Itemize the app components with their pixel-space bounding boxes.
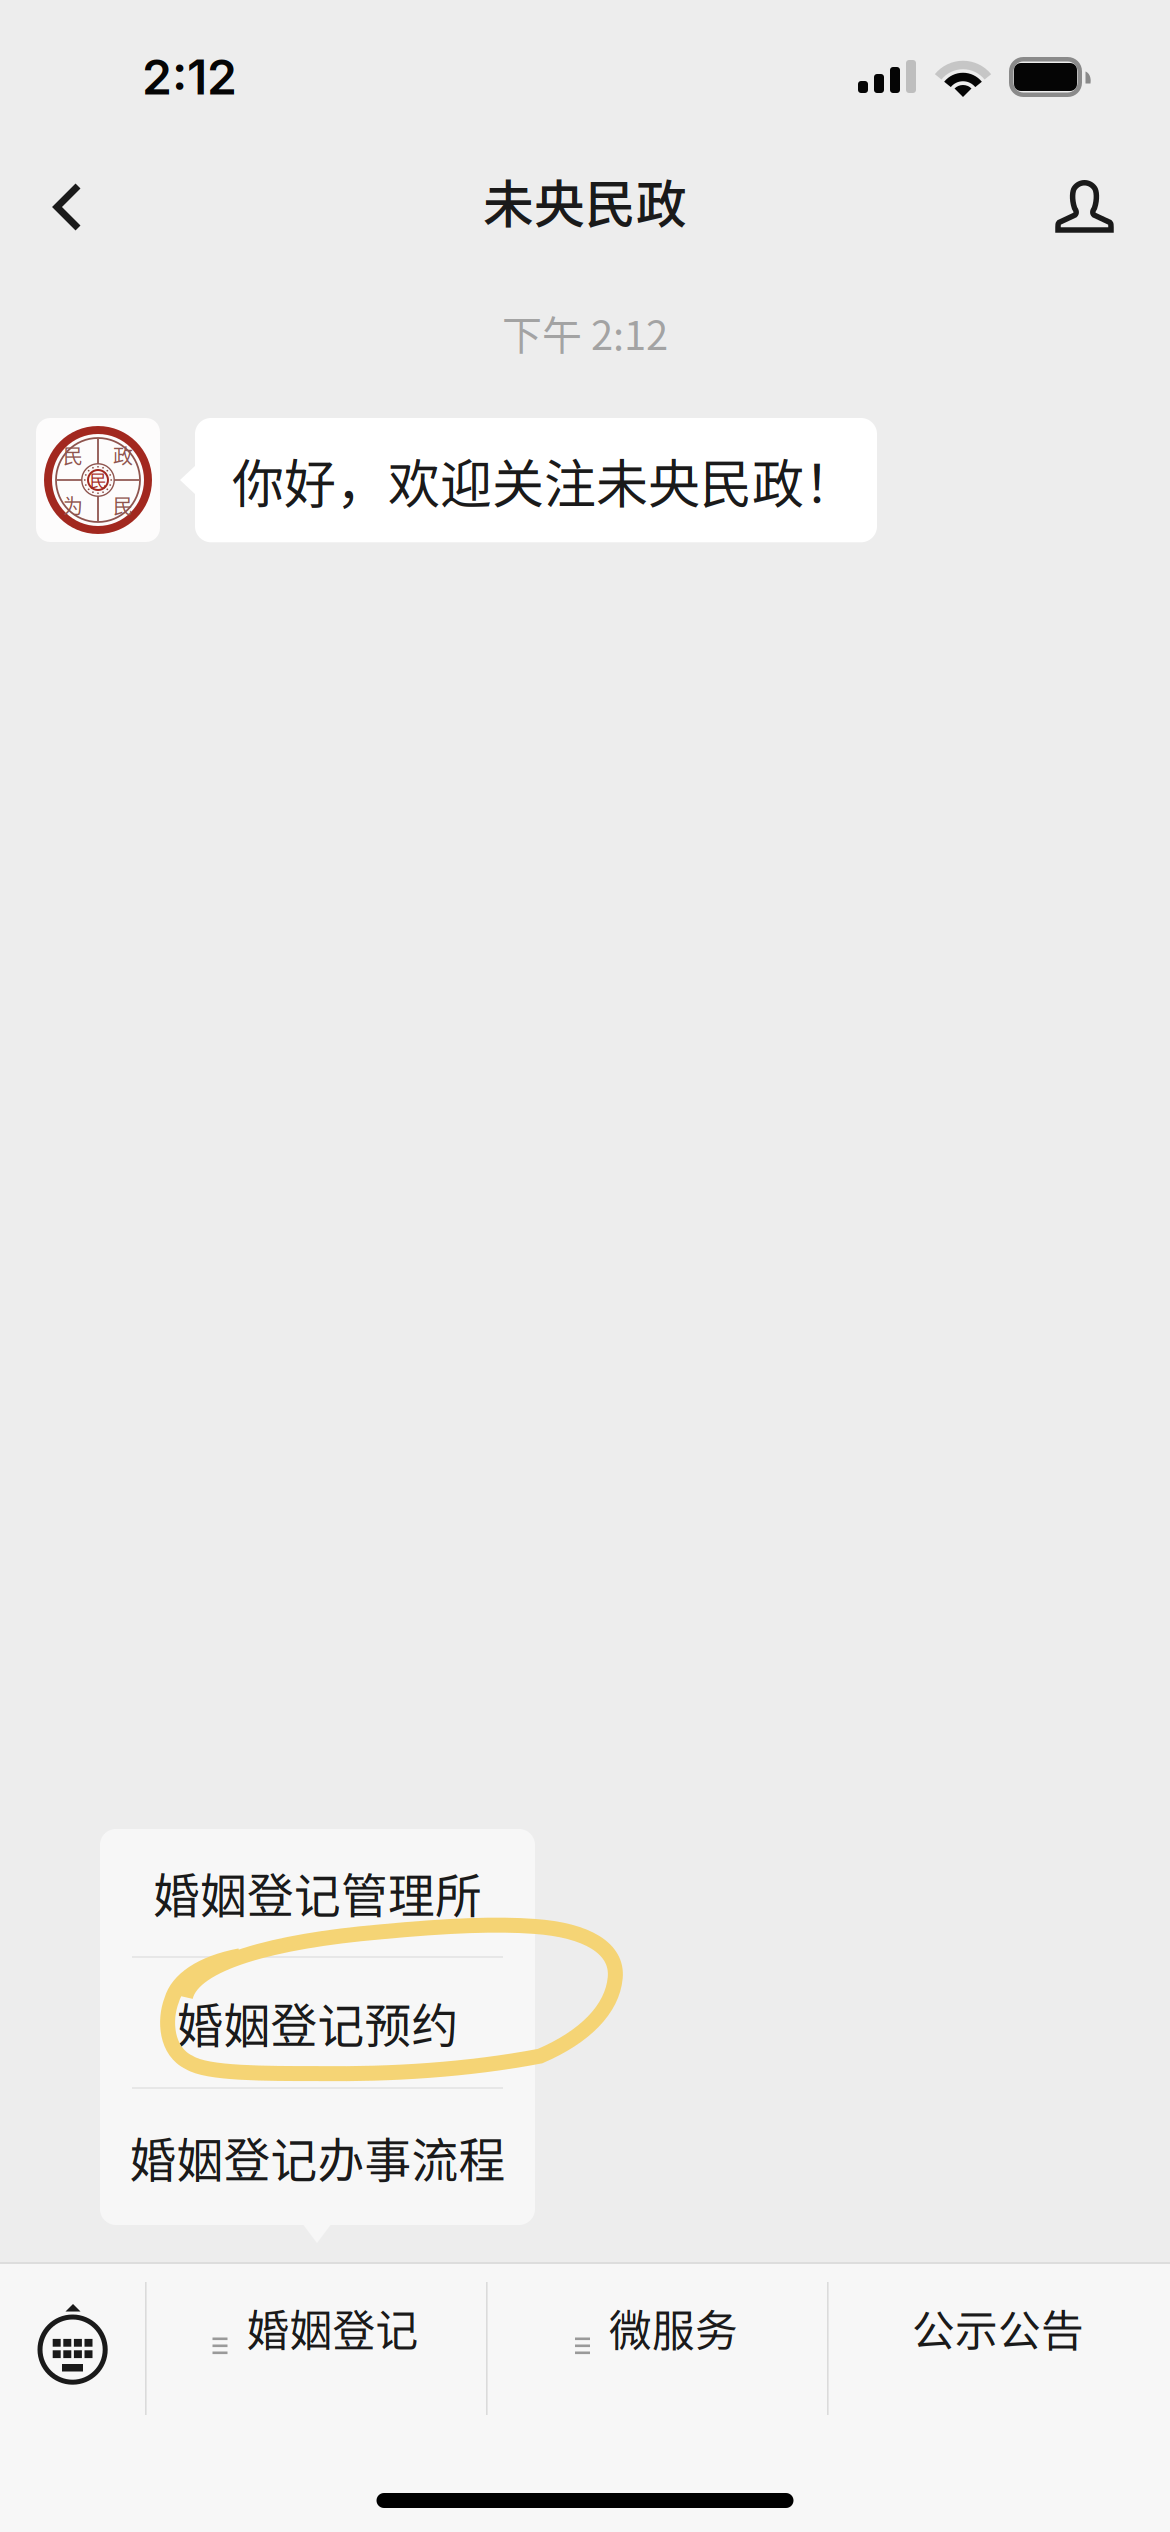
button[interactable]: Profile (1012, 151, 1170, 251)
button[interactable]: Keyboard (0, 2264, 145, 2392)
staticText: 为 (63, 490, 83, 519)
staticText: 民 (113, 490, 133, 519)
button[interactable]: 微服务 (486, 2264, 827, 2392)
button[interactable]: Back (0, 153, 126, 249)
button[interactable]: 婚姻登记 (145, 2264, 486, 2392)
button[interactable]: 婚姻登记办事流程 (100, 2089, 535, 2225)
button[interactable]: 婚姻登记管理所 (100, 1829, 535, 1956)
staticText: 婚姻登记 (246, 2297, 418, 2359)
button[interactable]: 婚姻登记预约 (100, 1958, 535, 2087)
staticText: 政 (113, 440, 133, 469)
staticText: 你好，欢迎关注未央民政！ (232, 443, 856, 518)
staticText: 未央民政 (483, 164, 687, 238)
staticText: 婚姻登记管理所 (153, 1859, 482, 1926)
staticText: 婚姻登记预约 (176, 1989, 458, 2056)
staticText: 微服务 (609, 2297, 738, 2359)
staticText: 公示公告 (912, 2297, 1084, 2359)
staticText: 婚姻登记办事流程 (129, 2123, 505, 2191)
button[interactable]: 公示公告 (827, 2264, 1169, 2392)
staticText: 2:12 (142, 48, 237, 106)
staticText: 民 (63, 440, 83, 469)
staticText: 下午 2:12 (502, 303, 668, 361)
staticText: 民 (89, 467, 106, 493)
